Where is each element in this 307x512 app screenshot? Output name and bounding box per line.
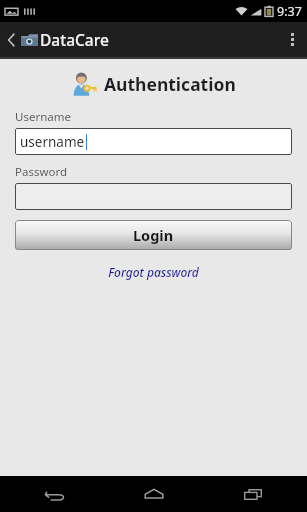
- staticText: Authentication: [104, 72, 236, 96]
- staticText: username: [20, 133, 85, 151]
- button[interactable]: Forgot password: [15, 264, 292, 280]
- staticText: Password: [15, 164, 68, 180]
- button[interactable]: Back: [4, 30, 44, 50]
- button[interactable]: username: [15, 128, 292, 155]
- other: Back: [7, 32, 16, 48]
- button[interactable]: Home: [134, 476, 174, 512]
- staticText: Username: [15, 109, 71, 125]
- staticText: DataCare: [40, 29, 109, 50]
- button[interactable]: [15, 183, 292, 210]
- button[interactable]: Login: [15, 220, 292, 250]
- button[interactable]: More options: [277, 22, 307, 57]
- staticText: Forgot password: [108, 264, 199, 280]
- staticText: Login: [133, 225, 174, 245]
- staticText: 9:37: [277, 3, 302, 20]
- button[interactable]: Recent apps: [233, 476, 273, 512]
- button[interactable]: Back: [34, 476, 74, 512]
